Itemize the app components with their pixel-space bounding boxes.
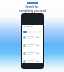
button[interactable] bbox=[23, 60, 42, 63]
button[interactable] bbox=[23, 36, 42, 39]
button[interactable] bbox=[23, 44, 42, 47]
staticText: everything you need bbox=[19, 9, 46, 13]
button[interactable] bbox=[23, 25, 42, 28]
button[interactable]: All bbox=[23, 31, 27, 33]
button[interactable] bbox=[23, 52, 42, 55]
staticText: Search for bbox=[25, 5, 39, 9]
